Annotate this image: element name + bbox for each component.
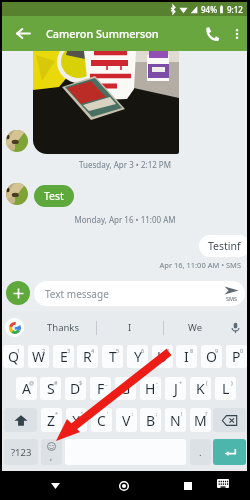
staticText: M [194,411,207,430]
button[interactable]: H [140,377,161,400]
button[interactable]: L [215,377,236,400]
button[interactable]: O [201,345,222,368]
staticText: Z [47,411,56,430]
button[interactable]: More options [226,23,248,45]
button[interactable]: M [190,408,211,432]
staticText: 1 [17,347,21,354]
button[interactable]: T [102,345,123,368]
button[interactable]: G [115,377,136,400]
button[interactable]: Back [41,471,70,500]
button[interactable]: N [165,408,186,432]
staticText: T [109,347,117,366]
button[interactable]: R [77,345,98,368]
button[interactable]: Test [34,185,74,207]
button[interactable]: C [91,408,112,432]
button[interactable]: Enter [213,439,246,465]
staticText: B [146,411,156,430]
button[interactable]: ?123 [4,439,38,465]
staticText: Q [8,347,19,366]
staticText: S [47,379,55,398]
staticText: Tuesday, Apr 3 • 2:12 PM [0,159,250,170]
button[interactable]: A [16,377,37,400]
staticText: 4 [91,347,95,354]
staticText: ' [107,410,109,417]
staticText: 0 [240,347,244,354]
staticText: ; [156,410,158,417]
staticText: O [206,347,217,366]
button[interactable]: E [53,345,74,368]
staticText: . [199,446,202,459]
button[interactable]: Back [6,16,40,50]
button[interactable]: Voice input [224,312,246,343]
staticText: H [145,379,156,398]
staticText: ? [205,410,208,417]
button[interactable]: S [40,377,61,400]
staticText: 94% [201,4,217,15]
staticText: Apr 16, 11:00 AM • SMS [0,260,241,270]
staticText: Monday, Apr 16 • 11:00 AM [0,214,250,225]
staticText: ) [231,379,233,386]
button[interactable]: Add attachment [6,281,30,305]
staticText: C [97,411,106,430]
staticText: I [184,347,189,366]
staticText: U [157,347,168,366]
staticText: ( [206,379,208,386]
button[interactable]: Thanks [30,312,96,343]
button[interactable]: I [176,345,197,368]
button[interactable]: D [65,377,86,400]
staticText: @ [29,379,34,386]
button[interactable] [33,51,179,154]
staticText: Text message [45,287,109,301]
staticText: 9:12 [227,4,243,15]
staticText: - [156,379,158,386]
button[interactable]: Google search [5,318,24,337]
staticText: L [222,379,230,398]
button[interactable]: W [28,345,49,368]
staticText: * [55,410,59,417]
button[interactable]: Home [109,471,138,500]
button[interactable]: V [116,408,137,432]
button[interactable]: Testinf [199,235,250,257]
staticText: J [174,379,178,398]
staticText: : [132,410,134,417]
staticText: N [170,411,181,430]
button[interactable]: K [190,377,211,400]
staticText: Y [134,347,142,366]
button[interactable]: X [66,408,87,432]
button[interactable]: Period [190,439,211,465]
staticText: & [128,379,133,386]
staticText: D [70,379,81,398]
button[interactable]: I [97,312,163,343]
button[interactable]: U [152,345,173,368]
button[interactable]: Send SMS [224,286,239,302]
staticText: F [97,379,105,398]
staticText: A [22,379,31,398]
button[interactable]: Q [3,345,24,368]
staticText: K [196,379,205,398]
button[interactable]: Backspace [213,408,246,432]
button[interactable]: Call [199,21,225,47]
staticText: 5 [116,347,120,354]
button[interactable]: We [164,312,226,343]
staticText: 7 [166,347,170,354]
button[interactable]: P [226,345,247,368]
button[interactable]: F [90,377,111,400]
button[interactable]: Text message [34,281,245,306]
button[interactable]: B [140,408,161,432]
button[interactable]: Recent apps [173,471,202,500]
button[interactable]: Shift [4,408,37,432]
button[interactable]: Emoji and comma [41,439,62,465]
staticText: Cameron Summerson [46,26,159,41]
staticText: G [120,379,131,398]
staticText: ?123 [11,446,32,459]
button[interactable]: Z [41,408,62,432]
staticText: 2 [42,347,46,354]
staticText: I [128,321,132,334]
button[interactable]: Y [127,345,148,368]
staticText: Testinf [208,239,241,253]
button[interactable]: Keyboard [211,471,235,495]
staticText: ! [181,410,183,417]
button[interactable]: J [165,377,186,400]
staticText: P [232,347,241,366]
